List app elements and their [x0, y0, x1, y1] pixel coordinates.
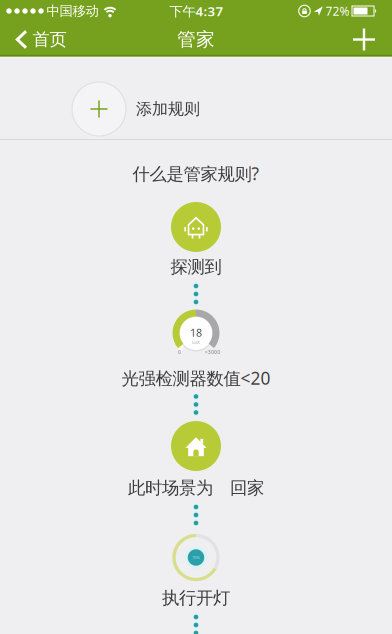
staticText: 管家 [177, 28, 215, 51]
button[interactable]: 首页 [8, 23, 74, 56]
staticText: 72% [325, 3, 349, 19]
staticText: 70% [187, 551, 205, 564]
staticText: 18 [190, 325, 202, 340]
staticText: 0 [177, 347, 182, 357]
staticText: 中国移动 [46, 3, 98, 19]
staticText: 首页 [32, 29, 66, 50]
staticText: 光强检测器数值<20 [121, 366, 270, 389]
staticText: 此时场景为 回家 [128, 477, 264, 499]
staticText: >3000 [200, 347, 225, 357]
staticText: 下午4:37 [169, 2, 223, 20]
button[interactable]: 添加 [342, 23, 386, 56]
button[interactable]: 添加规则 [0, 57, 392, 140]
staticText: 探测到 [170, 256, 221, 278]
staticText: 添加规则 [136, 99, 200, 119]
staticText: LUX [188, 337, 203, 348]
staticText: 执行开灯 [162, 587, 230, 609]
staticText: 什么是管家规则? [132, 162, 259, 185]
